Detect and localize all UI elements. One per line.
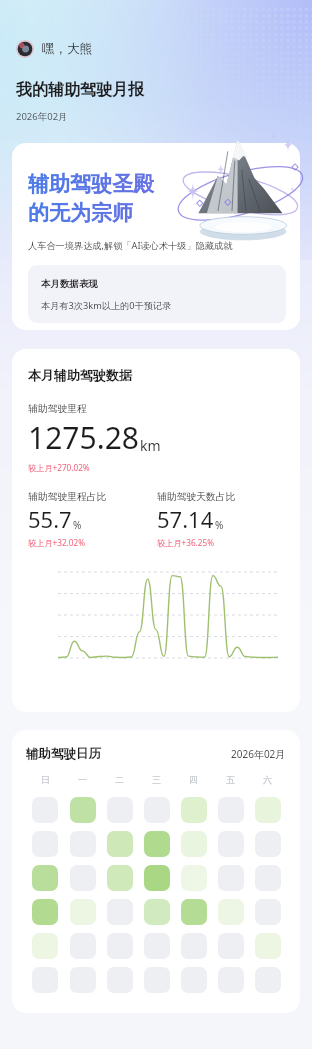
button[interactable] <box>32 865 58 891</box>
staticText: 辅助驾驶里程占比 <box>28 491 107 503</box>
button[interactable] <box>255 865 281 891</box>
button[interactable] <box>107 933 133 959</box>
staticText: % <box>73 518 82 532</box>
button[interactable] <box>144 865 170 891</box>
staticText: 日 <box>41 774 50 785</box>
button[interactable]: 辅助驾驶日历 <box>12 730 300 1013</box>
staticText: 的无为宗师 <box>28 200 133 226</box>
button[interactable] <box>181 831 207 857</box>
button[interactable] <box>218 831 244 857</box>
button[interactable] <box>107 797 133 823</box>
button[interactable] <box>218 797 244 823</box>
staticText: 较上月+270.02% <box>28 462 90 473</box>
button[interactable] <box>255 797 281 823</box>
button[interactable] <box>32 899 58 925</box>
button[interactable] <box>144 899 170 925</box>
button[interactable] <box>70 933 96 959</box>
button[interactable]: 本月数据表现 <box>28 265 286 323</box>
staticText: 较上月+32.02% <box>28 537 85 548</box>
staticText: 二 <box>115 774 124 785</box>
button[interactable] <box>255 899 281 925</box>
staticText: 本月辅助驾驶数据 <box>28 367 132 383</box>
staticText: 本月有3次3km以上的0干预记录 <box>41 299 172 312</box>
staticText: 辅助驾驶日历 <box>26 746 101 762</box>
staticText: 辅助驾驶天数占比 <box>157 491 236 503</box>
staticText: 57.14 <box>157 504 214 534</box>
button[interactable] <box>181 933 207 959</box>
staticText: 人车合一境界达成,解锁「AI读心术十级」隐藏成就 <box>28 239 233 252</box>
button[interactable] <box>32 967 58 993</box>
button[interactable] <box>32 797 58 823</box>
button[interactable] <box>70 865 96 891</box>
button[interactable] <box>144 797 170 823</box>
button[interactable] <box>70 899 96 925</box>
staticText: 辅助驾驶里程 <box>28 403 87 415</box>
button[interactable] <box>32 831 58 857</box>
button[interactable] <box>255 831 281 857</box>
staticText: 一 <box>78 774 87 785</box>
staticText: 我的辅助驾驶月报 <box>16 80 144 100</box>
button[interactable] <box>107 967 133 993</box>
staticText: 55.7 <box>28 504 72 534</box>
staticText: 嘿，大熊 <box>42 41 92 57</box>
button[interactable] <box>70 831 96 857</box>
button[interactable] <box>107 831 133 857</box>
button[interactable] <box>218 899 244 925</box>
staticText: 三 <box>152 774 161 785</box>
button[interactable] <box>181 899 207 925</box>
staticText: 本月数据表现 <box>41 278 98 290</box>
staticText: % <box>215 518 224 532</box>
button[interactable] <box>181 797 207 823</box>
staticText: 较上月+36.25% <box>157 537 214 548</box>
button[interactable] <box>181 865 207 891</box>
button[interactable] <box>70 967 96 993</box>
button[interactable] <box>218 967 244 993</box>
button[interactable] <box>70 797 96 823</box>
button[interactable]: 本月辅助驾驶数据 <box>12 349 300 712</box>
staticText: 辅助驾驶圣殿 <box>28 171 154 197</box>
button[interactable]: 辅助驾驶圣殿 <box>12 143 300 330</box>
button[interactable] <box>218 933 244 959</box>
button[interactable] <box>144 933 170 959</box>
other: Profile avatar <box>16 40 34 58</box>
button[interactable]: Profile avatar <box>16 40 92 58</box>
button[interactable] <box>181 967 207 993</box>
staticText: 六 <box>263 774 272 785</box>
staticText: km <box>140 436 161 455</box>
button[interactable] <box>32 933 58 959</box>
staticText: 1275.28 <box>28 417 139 458</box>
staticText: 2026年02月 <box>231 747 286 761</box>
button[interactable] <box>144 831 170 857</box>
button[interactable] <box>255 967 281 993</box>
button[interactable] <box>218 865 244 891</box>
staticText: 五 <box>226 774 235 785</box>
staticText: 四 <box>189 774 198 785</box>
staticText: 2026年02月 <box>16 110 68 123</box>
button[interactable] <box>255 933 281 959</box>
button[interactable] <box>144 967 170 993</box>
button[interactable] <box>107 899 133 925</box>
button[interactable] <box>107 865 133 891</box>
